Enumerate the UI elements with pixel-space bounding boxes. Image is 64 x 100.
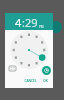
button[interactable]: Confirm time bbox=[42, 66, 51, 75]
button[interactable]: OK bbox=[41, 78, 50, 84]
button[interactable]: Add alarm bbox=[50, 21, 62, 33]
button[interactable]: CANCEL bbox=[22, 78, 39, 84]
staticText: PM bbox=[39, 25, 44, 29]
button[interactable]: 4 bbox=[15, 15, 22, 30]
button[interactable] bbox=[10, 31, 48, 69]
staticText: CANCEL bbox=[24, 79, 37, 83]
button[interactable]: 29 bbox=[25, 15, 38, 30]
staticText: : bbox=[22, 15, 25, 30]
button[interactable]: PM bbox=[39, 25, 44, 29]
staticText: OK bbox=[43, 79, 48, 83]
button[interactable]: Switch to text input bbox=[8, 64, 17, 73]
